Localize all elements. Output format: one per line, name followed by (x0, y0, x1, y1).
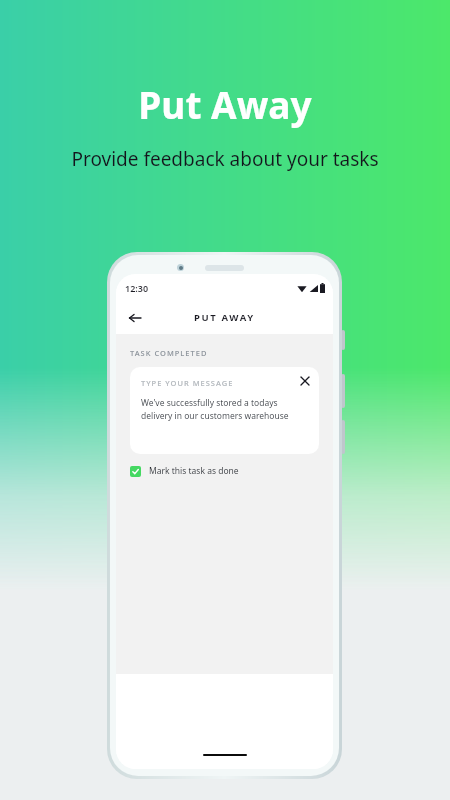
button[interactable]: Mark this task as done (130, 465, 239, 477)
staticText: Provide feedback about your tasks (71, 146, 379, 172)
staticText: Mark this task as done (149, 465, 239, 477)
button[interactable]: Clear message (298, 374, 312, 388)
button[interactable]: TYPE YOUR MESSAGE (130, 367, 319, 454)
button[interactable]: Back (122, 305, 148, 331)
staticText: TYPE YOUR MESSAGE (141, 378, 234, 388)
staticText: Put Away (138, 79, 312, 129)
staticText: PUT AWAY (194, 311, 255, 324)
staticText: TASK COMPLETED (130, 348, 208, 358)
staticText: 12:30 (125, 282, 149, 294)
staticText: We've successfully stored a todays deliv… (141, 397, 289, 422)
